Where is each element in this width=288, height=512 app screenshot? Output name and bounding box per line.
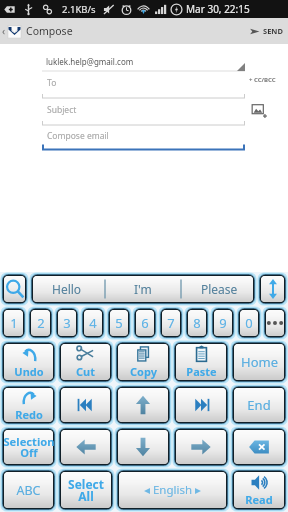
button[interactable]: To <box>42 73 245 99</box>
button[interactable]: SEND <box>243 18 288 44</box>
staticText: Paste <box>186 364 217 379</box>
staticText: 2 <box>37 314 45 332</box>
button[interactable]: Up <box>0 18 26 44</box>
staticText: 6 <box>141 314 149 332</box>
button[interactable]: down <box>114 426 172 468</box>
button[interactable]: 5 <box>106 306 132 340</box>
button[interactable]: Hello <box>29 272 105 306</box>
button[interactable]: up <box>114 384 172 426</box>
staticText: 0 <box>245 314 253 332</box>
staticText: 3 <box>63 314 71 332</box>
staticText: SEND <box>263 26 283 36</box>
staticText: Home <box>241 353 278 371</box>
button[interactable]: Attach image <box>250 102 268 120</box>
staticText: I'm <box>134 281 152 297</box>
staticText: Mar 30, 22:15 <box>186 2 250 16</box>
staticText: ABC <box>16 482 41 499</box>
button[interactable]: Subject <box>42 100 245 126</box>
staticText: ◂ English ▸ <box>144 482 201 498</box>
button[interactable]: Home <box>230 340 288 384</box>
staticText: 8 <box>193 314 201 332</box>
button[interactable]: 4 <box>80 306 106 340</box>
staticText: 2.1KB/s <box>62 3 96 16</box>
button[interactable]: 8 <box>184 306 210 340</box>
button[interactable]: Undo <box>0 340 57 384</box>
button[interactable]: luklek.help@gmail.com <box>42 56 245 72</box>
button[interactable]: + CC/BCC <box>249 76 276 84</box>
button[interactable]: 7 <box>158 306 184 340</box>
staticText: Cut <box>76 364 95 379</box>
button[interactable]: Select All <box>57 468 115 512</box>
button[interactable]: ◂ English ▸ <box>115 468 230 512</box>
button[interactable]: 3 <box>54 306 80 340</box>
button[interactable]: ffwd <box>172 384 230 426</box>
button[interactable]: Redo <box>0 384 57 426</box>
button[interactable]: Read <box>230 468 288 512</box>
staticText: ‹ <box>2 24 6 38</box>
button[interactable]: right <box>172 426 230 468</box>
button[interactable]: I'm <box>105 272 181 306</box>
button[interactable]: Selection Off <box>0 426 57 468</box>
button[interactable]: rew <box>57 384 114 426</box>
staticText: 5 <box>115 314 123 332</box>
staticText: Select All <box>68 476 104 504</box>
staticText: 4 <box>89 314 97 332</box>
button[interactable]: Paste <box>172 340 230 384</box>
button[interactable]: Copy <box>114 340 172 384</box>
staticText: Redo <box>15 407 43 422</box>
staticText: Read <box>245 492 273 507</box>
button[interactable]: Cut <box>57 340 114 384</box>
button[interactable]: dots <box>262 306 288 340</box>
button[interactable]: Compose email <box>42 127 245 151</box>
staticText: 9 <box>219 314 227 332</box>
button[interactable]: End <box>230 384 288 426</box>
button[interactable]: 2 <box>27 306 54 340</box>
staticText: Compose email <box>47 130 109 142</box>
staticText: Copy <box>130 364 157 379</box>
staticText: 1 <box>10 314 18 332</box>
staticText: Selection Off <box>3 434 55 460</box>
staticText: Please <box>201 281 238 297</box>
button[interactable]: updown <box>257 272 288 306</box>
staticText: Hello <box>52 281 82 297</box>
button[interactable]: 9 <box>210 306 236 340</box>
button[interactable]: 1 <box>0 306 27 340</box>
staticText: Subject <box>47 104 77 116</box>
button[interactable]: Please <box>181 272 257 306</box>
staticText: End <box>247 396 271 414</box>
button[interactable]: ABC <box>0 468 57 512</box>
button[interactable]: search <box>0 272 29 306</box>
button[interactable]: bksp <box>230 426 288 468</box>
staticText: Compose <box>26 24 73 38</box>
staticText: 7 <box>167 314 175 332</box>
staticText: Undo <box>14 364 44 379</box>
button[interactable]: 0 <box>236 306 262 340</box>
staticText: luklek.help@gmail.com <box>46 56 134 67</box>
button[interactable]: 6 <box>132 306 158 340</box>
button[interactable]: left <box>57 426 114 468</box>
staticText: To <box>47 77 57 89</box>
